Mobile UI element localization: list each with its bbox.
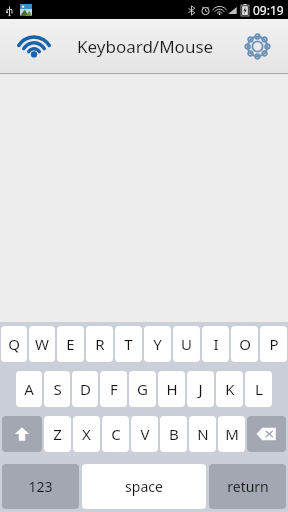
button[interactable]: Shift bbox=[2, 416, 42, 452]
staticText: F bbox=[110, 379, 118, 399]
staticText: U bbox=[181, 334, 192, 354]
staticText: V bbox=[140, 424, 150, 444]
staticText: L bbox=[255, 379, 263, 399]
staticText: R bbox=[95, 334, 105, 354]
staticText: T bbox=[124, 334, 133, 354]
button[interactable]: X bbox=[73, 416, 100, 452]
button[interactable]: Backspace bbox=[247, 416, 286, 452]
button[interactable]: W bbox=[29, 326, 55, 362]
staticText: O bbox=[239, 334, 251, 354]
button[interactable]: R bbox=[86, 326, 113, 362]
button[interactable]: V bbox=[131, 416, 158, 452]
staticText: Z bbox=[53, 424, 62, 444]
staticText: N bbox=[197, 424, 209, 444]
button[interactable]: P bbox=[260, 326, 287, 362]
staticText: return bbox=[227, 477, 269, 496]
staticText: Y bbox=[153, 334, 162, 354]
staticText: P bbox=[269, 334, 279, 354]
button[interactable]: C bbox=[102, 416, 129, 452]
button[interactable]: K bbox=[216, 371, 243, 407]
button[interactable]: L bbox=[245, 371, 272, 407]
button[interactable]: F bbox=[100, 371, 127, 407]
button[interactable]: O bbox=[231, 326, 258, 362]
staticText: A bbox=[24, 379, 34, 399]
button[interactable]: D bbox=[72, 371, 98, 407]
button[interactable]: space bbox=[82, 464, 206, 509]
staticText: G bbox=[137, 379, 148, 399]
staticText: J bbox=[198, 379, 203, 399]
button[interactable]: A bbox=[16, 371, 42, 407]
staticText: Q bbox=[8, 334, 20, 354]
staticText: X bbox=[82, 424, 91, 444]
button[interactable]: T bbox=[115, 326, 142, 362]
button[interactable]: Z bbox=[44, 416, 71, 452]
button[interactable]: N bbox=[189, 416, 216, 452]
staticText: Keyboard/Mouse bbox=[77, 35, 214, 58]
staticText: M bbox=[225, 424, 239, 444]
staticText: S bbox=[53, 379, 62, 399]
staticText: W bbox=[35, 334, 49, 354]
button[interactable]: return bbox=[209, 464, 286, 509]
button[interactable]: E bbox=[57, 326, 84, 362]
button[interactable]: Y bbox=[144, 326, 171, 362]
staticText: I bbox=[213, 334, 219, 354]
staticText: 09:19 bbox=[253, 2, 284, 18]
staticText: C bbox=[111, 424, 121, 444]
staticText: D bbox=[80, 379, 91, 399]
button[interactable]: 123 bbox=[2, 464, 79, 509]
button[interactable]: B bbox=[160, 416, 187, 452]
button[interactable]: H bbox=[158, 371, 185, 407]
button[interactable]: S bbox=[44, 371, 70, 407]
staticText: 123 bbox=[28, 477, 53, 496]
staticText: H bbox=[166, 379, 178, 399]
button[interactable]: U bbox=[173, 326, 200, 362]
button[interactable]: Settings bbox=[236, 25, 278, 67]
button[interactable]: I bbox=[202, 326, 229, 362]
staticText: space bbox=[125, 477, 163, 496]
button[interactable]: G bbox=[129, 371, 156, 407]
staticText: K bbox=[225, 379, 235, 399]
button[interactable]: Q bbox=[1, 326, 27, 362]
button[interactable]: J bbox=[187, 371, 214, 407]
button[interactable]: M bbox=[218, 416, 245, 452]
staticText: E bbox=[66, 334, 75, 354]
staticText: B bbox=[169, 424, 179, 444]
button[interactable]: Wi-Fi connection bbox=[14, 26, 54, 66]
